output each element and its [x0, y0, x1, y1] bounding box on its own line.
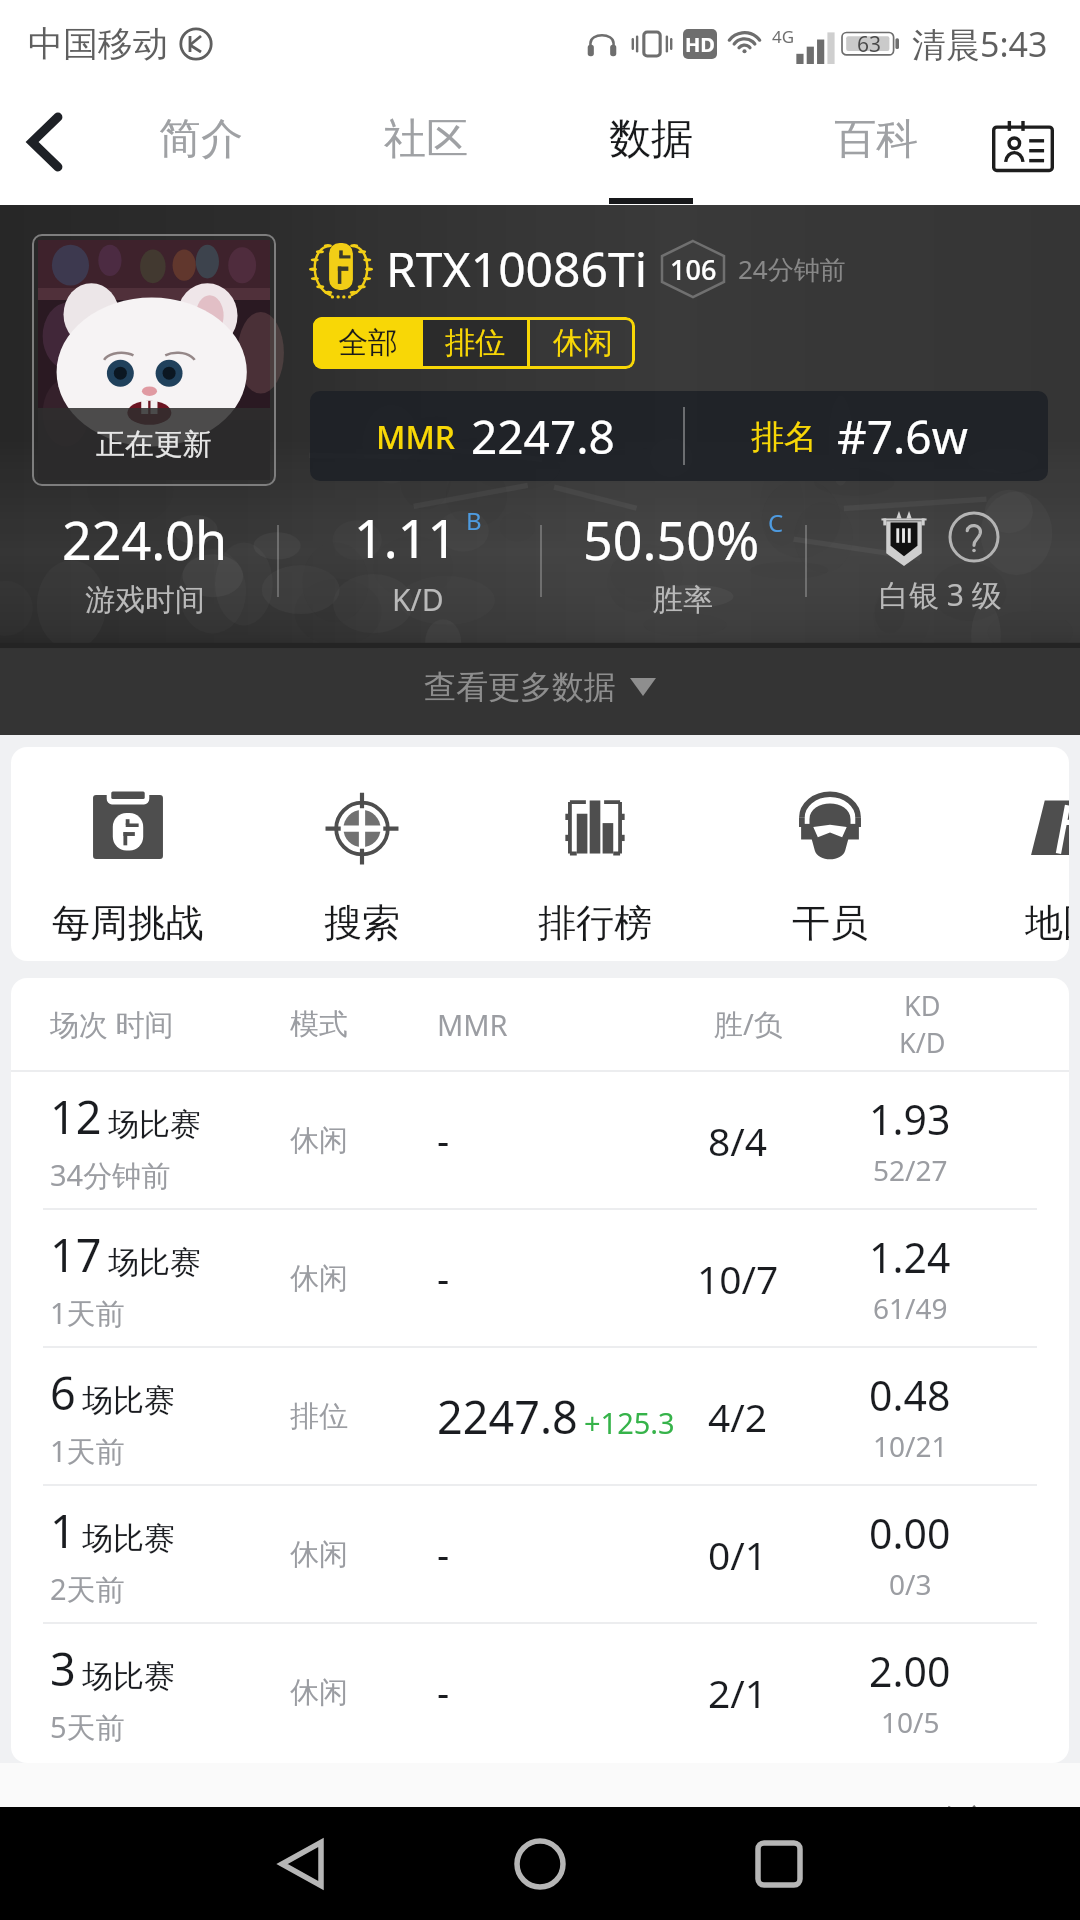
staticText: 2/1: [708, 1666, 768, 1719]
button[interactable]: 排行榜: [478, 788, 712, 961]
staticText: 0.00: [869, 1505, 951, 1561]
staticText: RTX10086Ti: [386, 236, 648, 301]
button[interactable]: 1: [11, 1486, 1069, 1622]
staticText: 正在更新: [96, 426, 212, 463]
staticText: KD: [904, 987, 941, 1024]
button[interactable]: 排位: [423, 317, 527, 369]
button[interactable]: 每周挑战: [11, 788, 245, 961]
staticText: HD: [685, 31, 715, 58]
staticText: MMR: [376, 415, 455, 459]
staticText: 5天前: [50, 1707, 125, 1747]
staticText: 白银 3 级: [879, 574, 1002, 615]
staticText: 0.48: [869, 1367, 951, 1423]
staticText: 106: [670, 251, 717, 288]
staticText: 社区: [384, 113, 468, 166]
staticText: 数据: [609, 113, 693, 166]
staticText: 排位: [445, 324, 505, 362]
staticText: 0/3: [889, 1565, 932, 1603]
button[interactable]: 正在更新: [38, 240, 270, 480]
staticText: 休闲: [290, 1674, 348, 1711]
staticText: 4/2: [708, 1390, 768, 1443]
staticText: 224.0h: [62, 504, 228, 575]
button[interactable]: MMR: [310, 391, 1048, 481]
button[interactable]: Back: [247, 1809, 357, 1919]
button[interactable]: Recents: [724, 1809, 834, 1919]
button[interactable]: Home: [485, 1809, 595, 1919]
button[interactable]: 休闲: [530, 317, 635, 369]
staticText: 排行榜: [485, 899, 705, 947]
button[interactable]: Profile card: [980, 104, 1066, 190]
button[interactable]: 社区: [313, 88, 538, 205]
button[interactable]: Back: [14, 111, 76, 173]
staticText: 12: [50, 1086, 102, 1147]
staticText: 1天前: [50, 1293, 125, 1333]
button[interactable]: 百科: [763, 88, 988, 205]
staticText: 胜率: [653, 581, 713, 619]
staticText: 场比赛: [82, 1657, 175, 1696]
staticText: 排位: [290, 1398, 348, 1435]
staticText: 休闲: [290, 1536, 348, 1573]
button[interactable]: 查看更多数据: [0, 639, 1080, 735]
staticText: B: [466, 504, 482, 537]
staticText: 63: [857, 30, 882, 59]
staticText: 游戏时间: [85, 581, 205, 619]
button[interactable]: 12: [11, 1072, 1069, 1208]
staticText: 8/4: [708, 1114, 768, 1167]
staticText: K/D: [392, 579, 444, 620]
staticText: 搜索: [252, 899, 472, 947]
button[interactable]: Help: [948, 511, 1000, 563]
staticText: 全部: [338, 324, 398, 362]
staticText: -: [437, 1252, 450, 1304]
staticText: 61/49: [873, 1289, 948, 1327]
staticText: 地图: [953, 899, 1069, 947]
button[interactable]: 6: [11, 1348, 1069, 1484]
button[interactable]: 干员: [713, 788, 947, 961]
staticText: 查看更多数据: [424, 667, 616, 707]
staticText: 17: [50, 1224, 102, 1285]
staticText: #7.6w: [837, 405, 968, 468]
staticText: 每周挑战: [18, 899, 238, 947]
staticText: 10/7: [697, 1252, 779, 1305]
button[interactable]: 全部: [934, 1801, 1032, 1807]
staticText: 场比赛: [82, 1381, 175, 1420]
staticText: 2247.8: [437, 1386, 578, 1447]
staticText: 简介: [159, 113, 243, 166]
staticText: 清晨5:43: [912, 21, 1048, 67]
staticText: 1天前: [50, 1431, 125, 1471]
button[interactable]: 地图: [946, 788, 1069, 961]
button[interactable]: 数据: [538, 88, 763, 205]
staticText: 3: [50, 1638, 76, 1699]
button[interactable]: 17: [11, 1210, 1069, 1346]
staticText: -: [437, 1114, 450, 1166]
button[interactable]: 全部: [313, 317, 423, 369]
staticText: 10/5: [881, 1703, 940, 1741]
staticText: 百科: [834, 113, 918, 166]
staticText: K/D: [899, 1024, 946, 1061]
staticText: 场比赛: [108, 1243, 201, 1282]
staticText: -: [437, 1528, 450, 1580]
staticText: +125.3: [584, 1403, 675, 1442]
staticText: 0/1: [708, 1528, 768, 1581]
staticText: 场比赛: [108, 1105, 201, 1144]
staticText: 休闲: [290, 1260, 348, 1297]
staticText: 2.00: [869, 1643, 951, 1699]
staticText: 24分钟前: [738, 251, 846, 287]
staticText: C: [768, 506, 783, 539]
staticText: MMR: [437, 1005, 508, 1044]
button[interactable]: 搜索: [245, 788, 479, 961]
staticText: 场比赛: [82, 1519, 175, 1558]
staticText: 1.11: [354, 502, 458, 573]
staticText: 1: [50, 1500, 76, 1561]
button[interactable]: 简介: [88, 88, 313, 205]
staticText: 干员: [720, 899, 940, 947]
staticText: -: [437, 1666, 450, 1718]
staticText: 胜/负: [714, 1004, 783, 1044]
staticText: 4G: [772, 25, 795, 48]
staticText: 10/21: [873, 1427, 948, 1465]
staticText: 排名: [751, 416, 817, 458]
staticText: 中国移动: [28, 22, 168, 66]
staticText: 1.24: [869, 1229, 951, 1285]
staticText: 34分钟前: [50, 1155, 171, 1195]
button[interactable]: 3: [11, 1624, 1069, 1760]
staticText: 休闲: [553, 324, 613, 362]
